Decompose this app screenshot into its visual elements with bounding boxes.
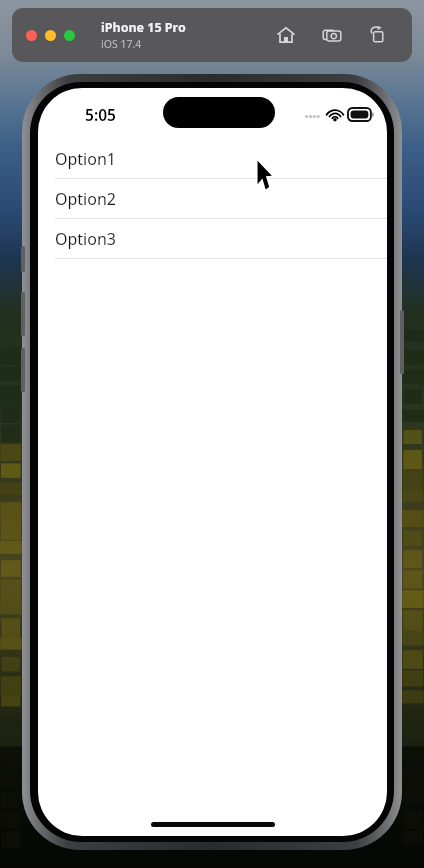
button[interactable]: Minimize	[45, 30, 56, 41]
staticText: Option1	[55, 148, 116, 170]
staticText: 5:05	[85, 104, 116, 125]
button[interactable]: Rotate	[366, 23, 390, 47]
button[interactable]: Option3	[38, 219, 387, 259]
button[interactable]: Close	[26, 30, 37, 41]
staticText: Option3	[55, 228, 116, 250]
button[interactable]: Zoom	[64, 30, 75, 41]
button[interactable]: Option2	[38, 179, 387, 219]
button[interactable]: Option1	[38, 139, 387, 179]
button[interactable]: Home	[274, 23, 298, 47]
button[interactable]: Screenshot	[320, 23, 344, 47]
staticText: iOS 17.4	[101, 37, 142, 51]
staticText: Option2	[55, 188, 116, 210]
staticText: iPhone 15 Pro	[101, 19, 186, 36]
